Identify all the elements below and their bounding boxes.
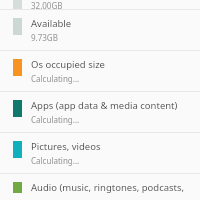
staticText: Apps (app data & media content) bbox=[31, 99, 178, 112]
button[interactable]: Apps (app data & media content) bbox=[0, 92, 200, 132]
staticText: Pictures, videos bbox=[31, 140, 101, 153]
staticText: 32.00GB bbox=[31, 0, 63, 9]
button[interactable]: 32.00GB bbox=[0, 0, 200, 9]
staticText: Audio (music, ringtones, podcasts, etc.) bbox=[31, 181, 192, 193]
button[interactable]: Audio (music, ringtones, podcasts, etc.) bbox=[0, 174, 200, 200]
staticText: Os occupied size bbox=[31, 58, 105, 71]
staticText: 9.73GB bbox=[31, 32, 58, 43]
staticText: Calculating... bbox=[31, 114, 80, 125]
staticText: Available bbox=[31, 17, 72, 30]
staticText: Calculating... bbox=[31, 73, 80, 84]
button[interactable]: Pictures, videos bbox=[0, 133, 200, 173]
button[interactable]: Available bbox=[0, 10, 200, 50]
button[interactable]: Os occupied size bbox=[0, 51, 200, 91]
staticText: Calculating... bbox=[31, 155, 80, 166]
